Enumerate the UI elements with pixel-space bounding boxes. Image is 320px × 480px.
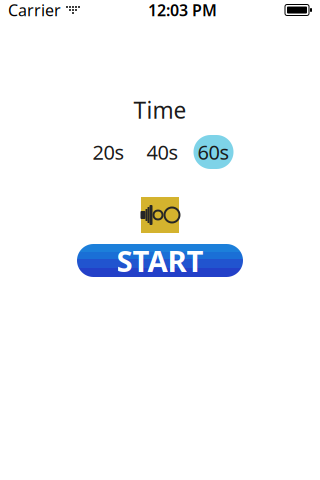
staticText: 60s: [197, 139, 229, 165]
staticText: 20s: [92, 139, 124, 165]
button[interactable]: 40s: [140, 135, 184, 169]
staticText: Time: [133, 95, 186, 125]
staticText: START: [116, 241, 203, 280]
staticText: Carrier: [8, 0, 61, 21]
button[interactable]: START: [77, 244, 243, 277]
button[interactable]: Sound: [141, 197, 179, 233]
button[interactable]: 60s: [193, 135, 233, 169]
staticText: 40s: [146, 139, 178, 165]
button[interactable]: 20s: [86, 135, 130, 169]
staticText: 12:03 PM: [148, 0, 217, 21]
